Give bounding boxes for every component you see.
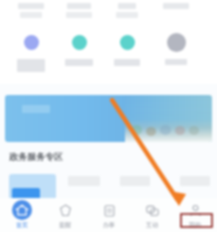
staticText: 我的 [189, 221, 201, 229]
button[interactable] [55, 0, 103, 80]
button[interactable]: 我的 [174, 198, 216, 229]
staticText: 首页 [16, 221, 28, 229]
button[interactable]: 提醒 [44, 198, 86, 229]
button[interactable]: 首页 [1, 198, 43, 229]
button[interactable] [7, 0, 55, 80]
staticText: 政务服务专区 [9, 151, 63, 162]
staticText: 提醒 [59, 221, 71, 229]
staticText: 办事 [103, 221, 115, 229]
button[interactable] [152, 0, 200, 80]
button[interactable]: 互动 [131, 198, 173, 229]
button[interactable]: 办事 [88, 198, 130, 229]
button[interactable] [103, 0, 151, 80]
staticText: 互动 [146, 221, 158, 229]
